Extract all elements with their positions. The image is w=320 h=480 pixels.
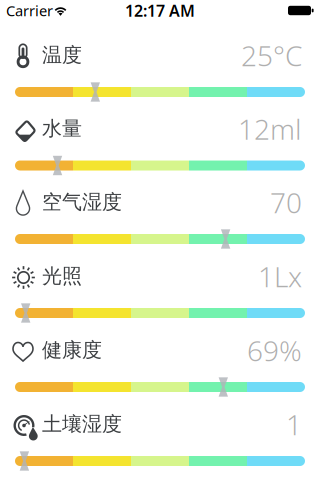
staticText: 12:17 AM [125, 0, 195, 21]
staticText: 空气湿度 [42, 190, 122, 214]
staticText: 健康度 [42, 338, 102, 362]
staticText: 1Lx [258, 258, 302, 295]
staticText: 25°C [241, 37, 302, 74]
button[interactable]: 调节土壤湿度 [15, 451, 305, 471]
staticText: 土壤湿度 [42, 412, 122, 436]
staticText: 12ml [238, 110, 302, 148]
button[interactable]: 调节健康度 [15, 377, 305, 397]
staticText: 光照 [42, 264, 82, 288]
button[interactable]: 调节光照 [15, 303, 305, 323]
button[interactable]: 调节温度 [15, 82, 305, 102]
staticText: 水量 [42, 116, 82, 141]
staticText: 69% [247, 332, 302, 369]
staticText: 70 [270, 184, 302, 221]
staticText: 1 [286, 406, 302, 443]
staticText: 温度 [42, 43, 82, 67]
button[interactable]: 调节空气湿度 [15, 229, 305, 249]
button[interactable]: 调节水量 [15, 155, 305, 175]
staticText: Carrier [6, 1, 53, 20]
